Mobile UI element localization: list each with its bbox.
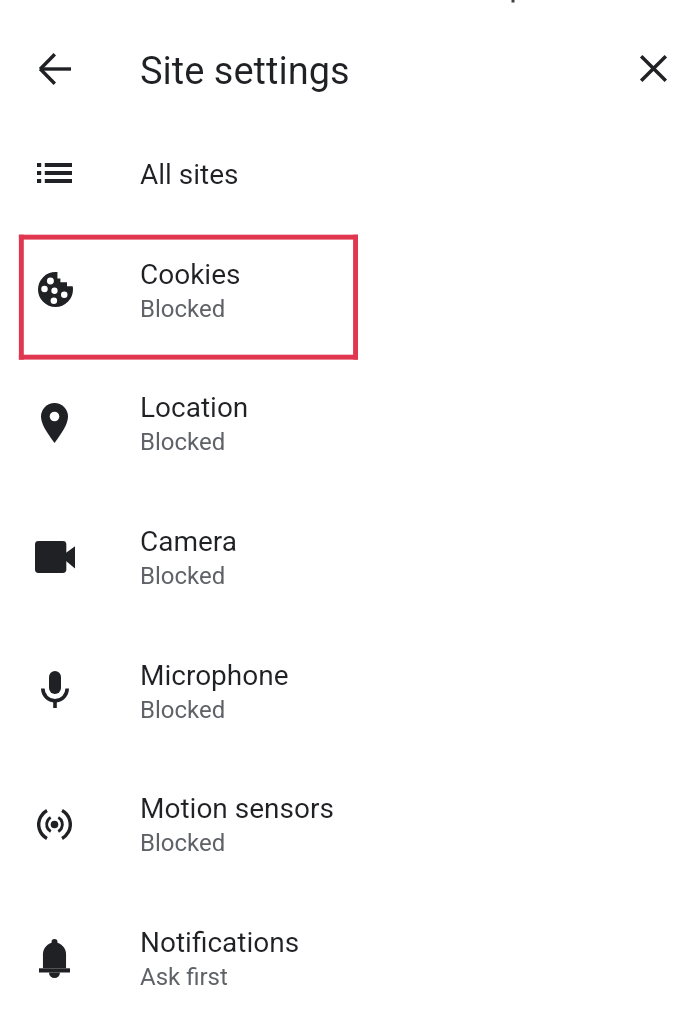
- staticText: Ask first: [140, 963, 228, 991]
- button[interactable]: Camera: [0, 500, 700, 600]
- staticText: Camera: [140, 525, 238, 558]
- button[interactable]: Notifications: [0, 901, 700, 1001]
- staticText: Blocked: [140, 295, 226, 323]
- button[interactable]: Close: [624, 39, 683, 98]
- button[interactable]: Back: [25, 39, 84, 98]
- button[interactable]: Location: [0, 366, 700, 466]
- staticText: Motion sensors: [140, 792, 334, 825]
- staticText: Microphone: [140, 659, 289, 692]
- staticText: All sites: [140, 158, 239, 191]
- button[interactable]: All sites: [0, 133, 700, 199]
- staticText: Cookies: [140, 258, 241, 291]
- staticText: Blocked: [140, 428, 226, 456]
- staticText: Site settings: [140, 49, 350, 94]
- button[interactable]: Cookies: [0, 233, 700, 333]
- button[interactable]: Motion sensors: [0, 767, 700, 867]
- staticText: Blocked: [140, 696, 226, 724]
- staticText: Blocked: [140, 562, 226, 590]
- staticText: Notifications: [140, 926, 300, 959]
- button[interactable]: Microphone: [0, 634, 700, 734]
- staticText: Blocked: [140, 829, 226, 857]
- staticText: Location: [140, 391, 249, 424]
